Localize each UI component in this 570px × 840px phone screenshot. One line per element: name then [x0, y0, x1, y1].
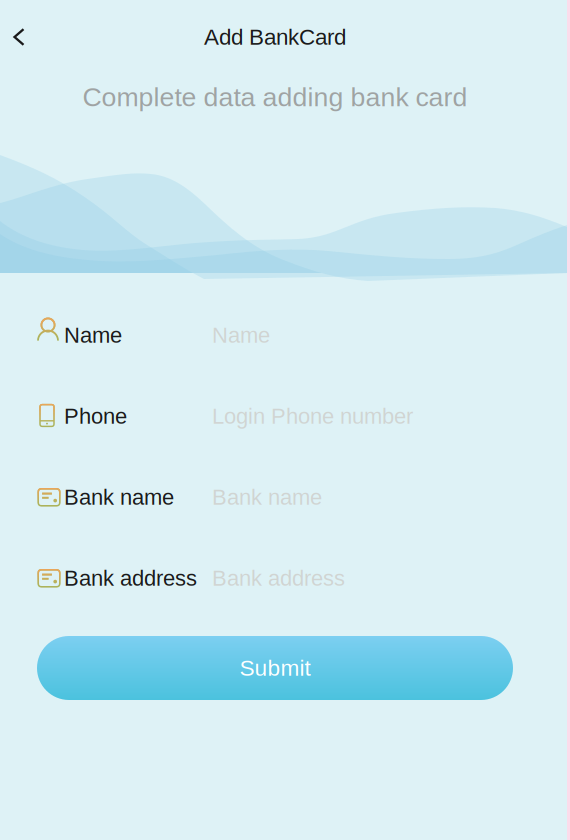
staticText: Complete data adding bank card — [82, 82, 467, 112]
button[interactable]: Bank address — [0, 555, 550, 601]
staticText: Name — [212, 323, 270, 347]
button[interactable]: Bank name — [0, 474, 550, 520]
staticText: Submit — [239, 655, 310, 681]
staticText: Login Phone number — [212, 404, 413, 428]
staticText: Bank name — [212, 485, 322, 509]
staticText: Add BankCard — [204, 24, 346, 49]
button[interactable]: Name — [0, 312, 550, 358]
staticText: Bank address — [64, 566, 197, 590]
staticText: Name — [64, 323, 122, 347]
button[interactable]: Back — [0, 14, 40, 60]
button[interactable]: Phone — [0, 393, 550, 439]
staticText: Bank address — [212, 566, 345, 590]
staticText: Bank name — [64, 485, 174, 509]
staticText: Phone — [64, 404, 127, 428]
button[interactable]: Submit — [37, 636, 513, 700]
